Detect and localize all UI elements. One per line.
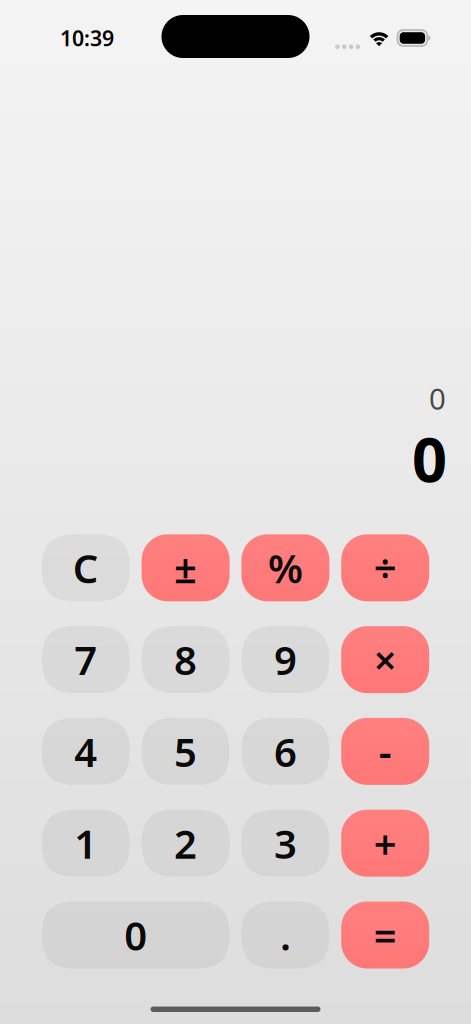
staticText: 8 (174, 633, 197, 686)
button[interactable]: 0 (42, 901, 230, 968)
staticText: 6 (274, 725, 297, 778)
button[interactable]: × (341, 626, 429, 693)
staticText: 0 (429, 379, 446, 418)
button[interactable]: 4 (42, 718, 130, 785)
staticText: 10:39 (60, 24, 114, 52)
button[interactable]: ± (142, 534, 230, 601)
button[interactable]: = (341, 901, 429, 968)
staticText: . (280, 908, 291, 961)
button[interactable]: 7 (42, 626, 130, 693)
staticText: + (374, 817, 397, 870)
staticText: % (268, 541, 303, 594)
staticText: 0 (124, 908, 147, 961)
button[interactable]: 6 (241, 718, 329, 785)
button[interactable]: 3 (241, 810, 329, 877)
staticText: 0 (412, 418, 447, 499)
button[interactable]: 1 (42, 810, 130, 877)
staticText: - (379, 725, 392, 778)
button[interactable]: 5 (142, 718, 230, 785)
button[interactable]: C (42, 534, 130, 601)
button[interactable]: . (241, 901, 329, 968)
staticText: C (73, 541, 99, 594)
staticText: 3 (274, 817, 297, 870)
staticText: 9 (274, 633, 297, 686)
staticText: 2 (174, 817, 197, 870)
staticText: 5 (174, 725, 197, 778)
staticText: ÷ (374, 541, 397, 594)
staticText: 1 (74, 817, 97, 870)
staticText: × (374, 633, 397, 686)
staticText: = (374, 908, 397, 961)
staticText: ± (174, 541, 197, 594)
staticText: 7 (74, 633, 97, 686)
button[interactable]: 2 (142, 810, 230, 877)
button[interactable]: 8 (142, 626, 230, 693)
button[interactable]: + (341, 810, 429, 877)
button[interactable]: - (341, 718, 429, 785)
button[interactable]: ÷ (341, 534, 429, 601)
staticText: 4 (74, 725, 97, 778)
button[interactable]: % (241, 534, 329, 601)
button[interactable]: 9 (241, 626, 329, 693)
